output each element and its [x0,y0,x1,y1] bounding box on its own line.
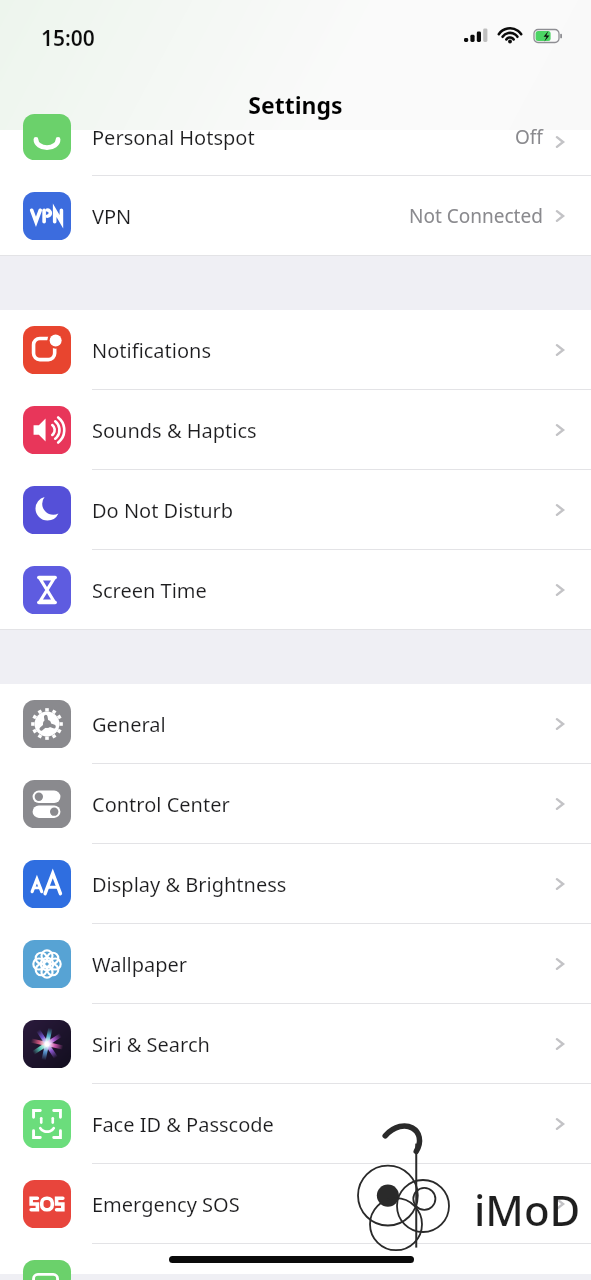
staticText: Display & Brightness [92,871,287,898]
staticText: 15:00 [41,24,95,53]
button[interactable] [0,1244,591,1274]
staticText: Wallpaper [92,951,188,978]
button[interactable]: General [0,684,591,764]
staticText: Notifications [92,337,211,364]
button[interactable]: Display & Brightness [0,844,591,924]
staticText: General [92,711,166,738]
staticText: Siri & Search [92,1031,210,1058]
button[interactable]: Wallpaper [0,924,591,1004]
staticText: Control Center [92,791,230,818]
staticText: Face ID & Passcode [92,1111,274,1138]
staticText: Emergency SOS [92,1191,240,1218]
button[interactable]: Notifications [0,310,591,390]
button[interactable]: Do Not Disturb [0,470,591,550]
button[interactable]: Emergency SOS [0,1164,591,1244]
staticText: Screen Time [92,577,207,604]
button[interactable]: Siri & Search [0,1004,591,1084]
button[interactable]: Screen Time [0,550,591,630]
button[interactable]: Sounds & Haptics [0,390,591,470]
button[interactable]: VPN [0,176,591,256]
staticText: Sounds & Haptics [92,417,257,444]
staticText: Not Connected [409,203,543,229]
button[interactable]: Personal Hotspot [0,130,591,176]
button[interactable]: Face ID & Passcode [0,1084,591,1164]
staticText: Do Not Disturb [92,497,234,524]
staticText: iMoD [474,1181,581,1238]
staticText: VPN [92,203,132,230]
staticText: Personal Hotspot [92,124,255,151]
staticText: Settings [248,89,343,120]
staticText: Off [515,124,543,150]
button[interactable]: Control Center [0,764,591,844]
